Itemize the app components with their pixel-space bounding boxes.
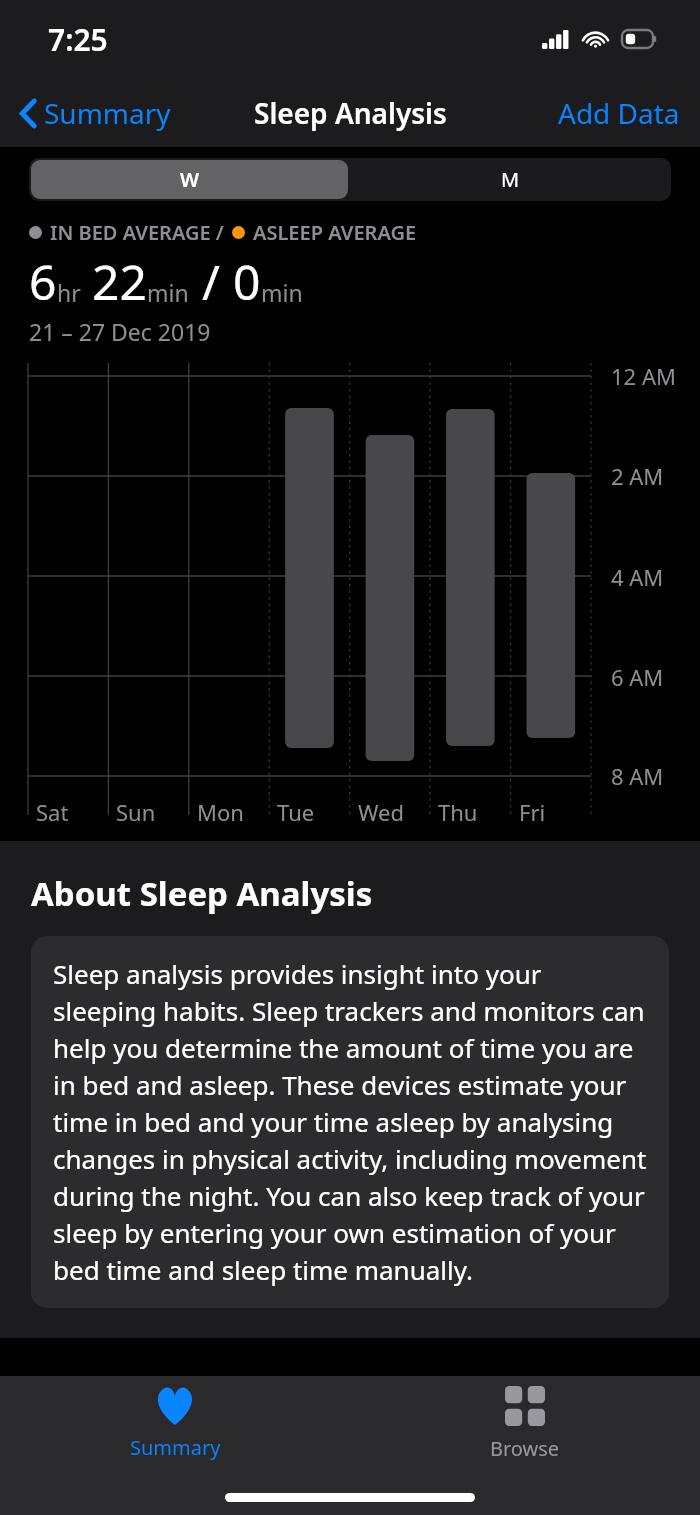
staticText: 22	[92, 249, 147, 314]
staticText: 2 AM	[611, 461, 664, 491]
staticText: Sun	[116, 797, 156, 827]
staticText: 0	[233, 249, 261, 314]
staticText: ASLEEP AVERAGE	[253, 219, 417, 246]
button[interactable]: Browse	[350, 1376, 700, 1471]
staticText: M	[501, 166, 520, 193]
button[interactable]: Summary	[0, 1376, 350, 1471]
staticText: hr	[57, 277, 81, 308]
staticText: Tue	[277, 797, 315, 827]
button[interactable]: Add Data	[538, 84, 700, 142]
other: Summary	[154, 1387, 196, 1425]
staticText: 6	[29, 249, 57, 314]
other: Browse	[505, 1386, 545, 1426]
staticText: 12 AM	[611, 361, 676, 391]
staticText: Sat	[36, 797, 69, 827]
button[interactable]: M	[350, 158, 671, 201]
staticText: Fri	[519, 797, 546, 827]
staticText: 4 AM	[611, 562, 664, 592]
staticText: Browse	[490, 1435, 560, 1462]
staticText: W	[180, 166, 200, 193]
staticText: Summary	[44, 94, 171, 132]
button[interactable]: Summary	[0, 86, 185, 140]
button[interactable]: W	[31, 160, 348, 199]
staticText: 7:25	[48, 19, 108, 60]
staticText: Wed	[358, 797, 404, 827]
staticText: Thu	[438, 797, 478, 827]
staticText: Sleep Analysis	[254, 94, 447, 132]
staticText: Add Data	[558, 94, 680, 132]
staticText: 6 AM	[611, 662, 664, 692]
staticText: Summary	[130, 1434, 221, 1461]
staticText: Mon	[197, 797, 244, 827]
staticText: Sleep analysis provides insight into you…	[53, 956, 647, 1288]
staticText: min	[147, 277, 189, 308]
staticText: /	[202, 249, 220, 314]
staticText: min	[261, 277, 303, 308]
staticText: 8 AM	[611, 761, 664, 791]
staticText: 21 – 27 Dec 2019	[29, 316, 211, 347]
staticText: About Sleep Analysis	[31, 871, 373, 916]
staticText: IN BED AVERAGE /	[50, 219, 224, 246]
